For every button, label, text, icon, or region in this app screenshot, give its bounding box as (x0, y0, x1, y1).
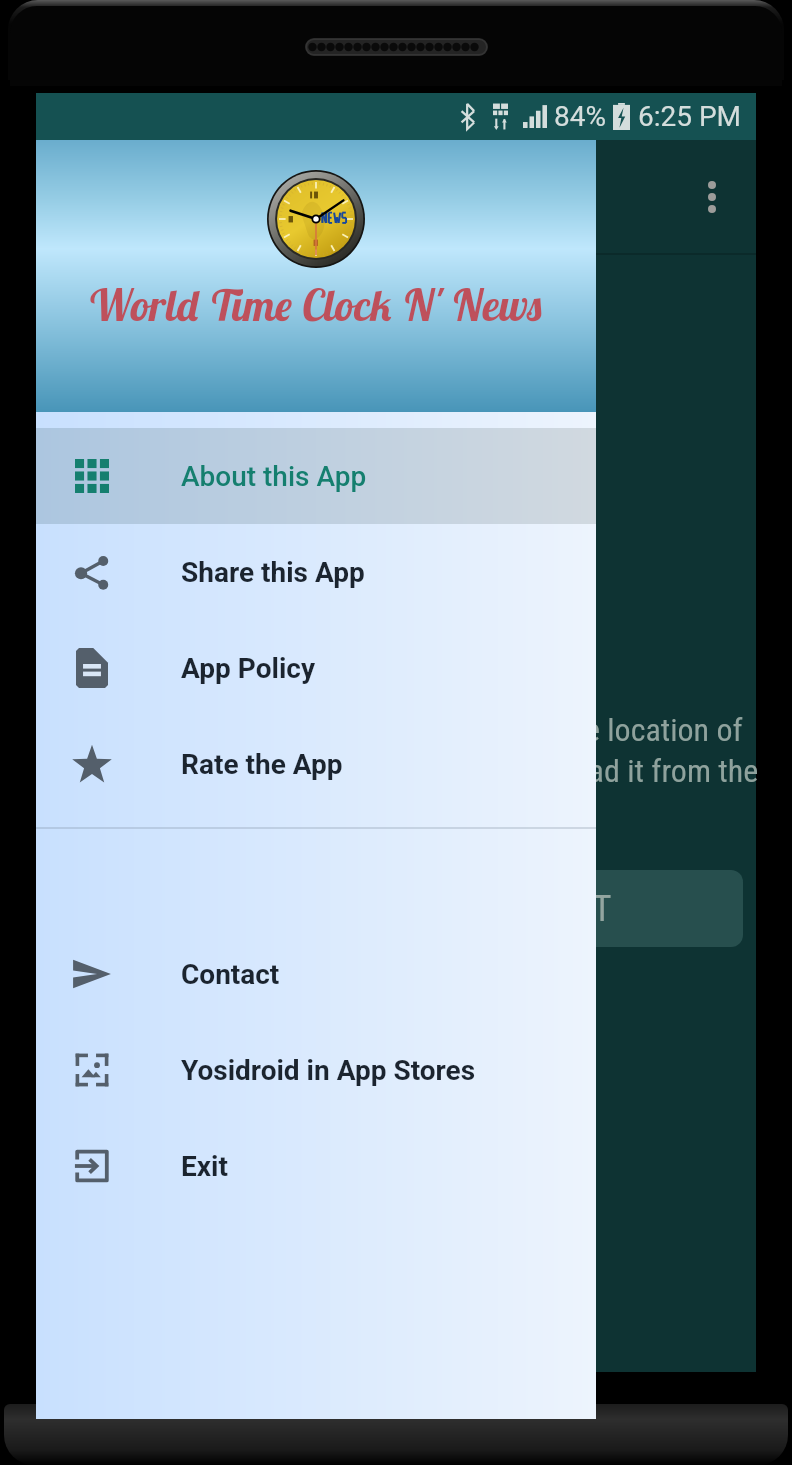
staticText: Share this App (181, 556, 365, 589)
staticText: Yosidroid in App Stores (181, 1054, 476, 1087)
staticText: App Policy (181, 652, 316, 685)
staticText: Exit (181, 1150, 228, 1183)
staticText: Contact (181, 958, 280, 991)
button[interactable]: Contact (36, 926, 596, 1022)
button[interactable]: App Policy (36, 620, 596, 716)
button[interactable]: Share this App (36, 524, 596, 620)
button[interactable]: Yosidroid in App Stores (36, 1022, 596, 1118)
staticText: 84% (554, 100, 606, 133)
staticText: SELECT A CITY FROM THE LIST (166, 888, 612, 930)
button[interactable]: Exit (36, 1118, 596, 1214)
staticText: Rate the App (181, 748, 343, 781)
staticText: Tap on the map or use the list to set th… (100, 711, 759, 832)
button[interactable]: About this App (36, 428, 596, 524)
button[interactable]: SELECT A CITY FROM THE LIST (76, 870, 743, 947)
staticText: About this App (181, 460, 367, 493)
button[interactable]: Rate the App (36, 716, 596, 812)
staticText: 6:25 PM (638, 100, 742, 133)
button[interactable]: More options (684, 169, 740, 225)
staticText: World Time Clock N' News (36, 278, 596, 332)
